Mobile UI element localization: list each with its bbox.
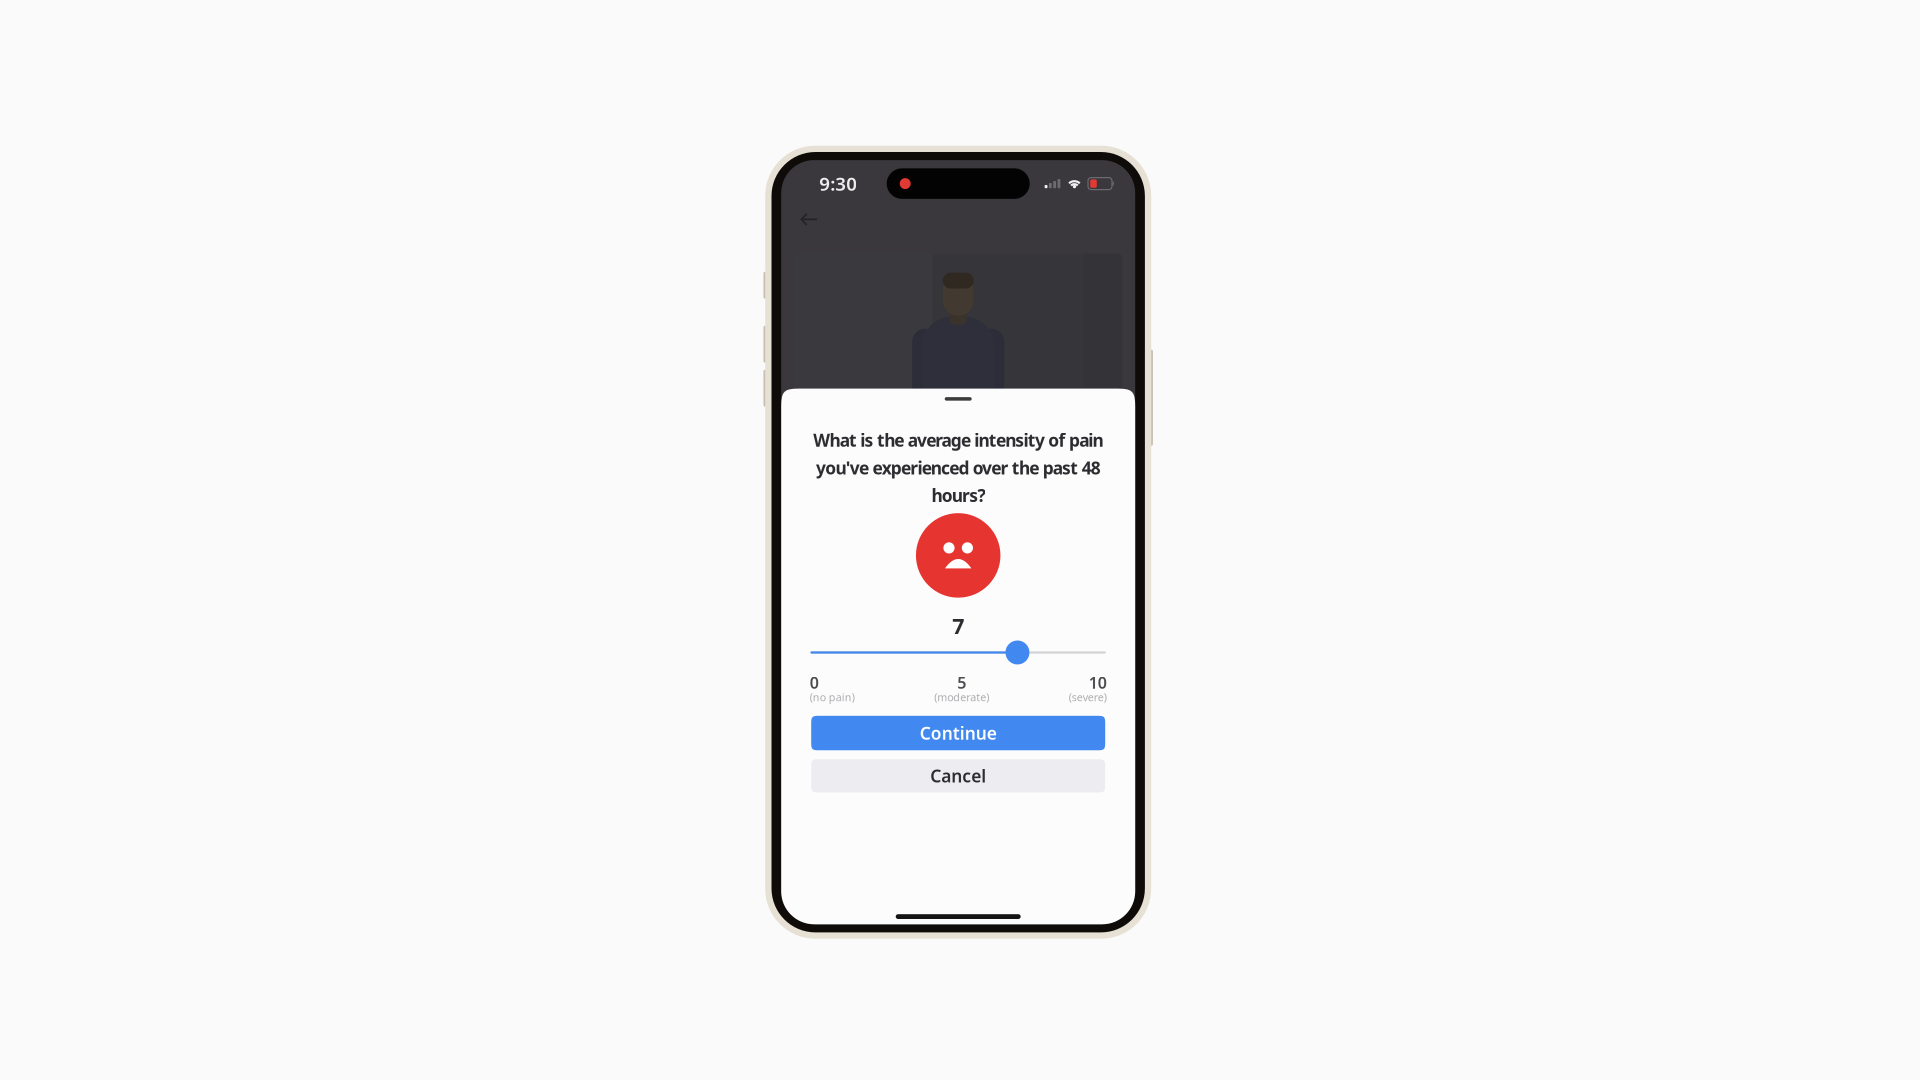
staticText: (moderate)	[934, 690, 989, 704]
button[interactable]: Cancel	[811, 759, 1105, 792]
staticText: 10	[1089, 672, 1107, 693]
staticText: (no pain)	[810, 690, 855, 704]
staticText: 5	[957, 672, 966, 693]
staticText: 7	[952, 612, 964, 640]
button[interactable]: Continue	[811, 716, 1105, 750]
staticText: Continue	[920, 721, 997, 744]
staticText: What is the average intensity of pain yo…	[813, 429, 1103, 507]
staticText: 0	[810, 672, 819, 693]
staticText: Cancel	[930, 764, 986, 787]
button[interactable]: Back	[792, 206, 826, 232]
staticText: 9:30	[819, 171, 857, 196]
staticText: (severe)	[1069, 690, 1107, 704]
button[interactable]: 7	[810, 640, 1106, 664]
